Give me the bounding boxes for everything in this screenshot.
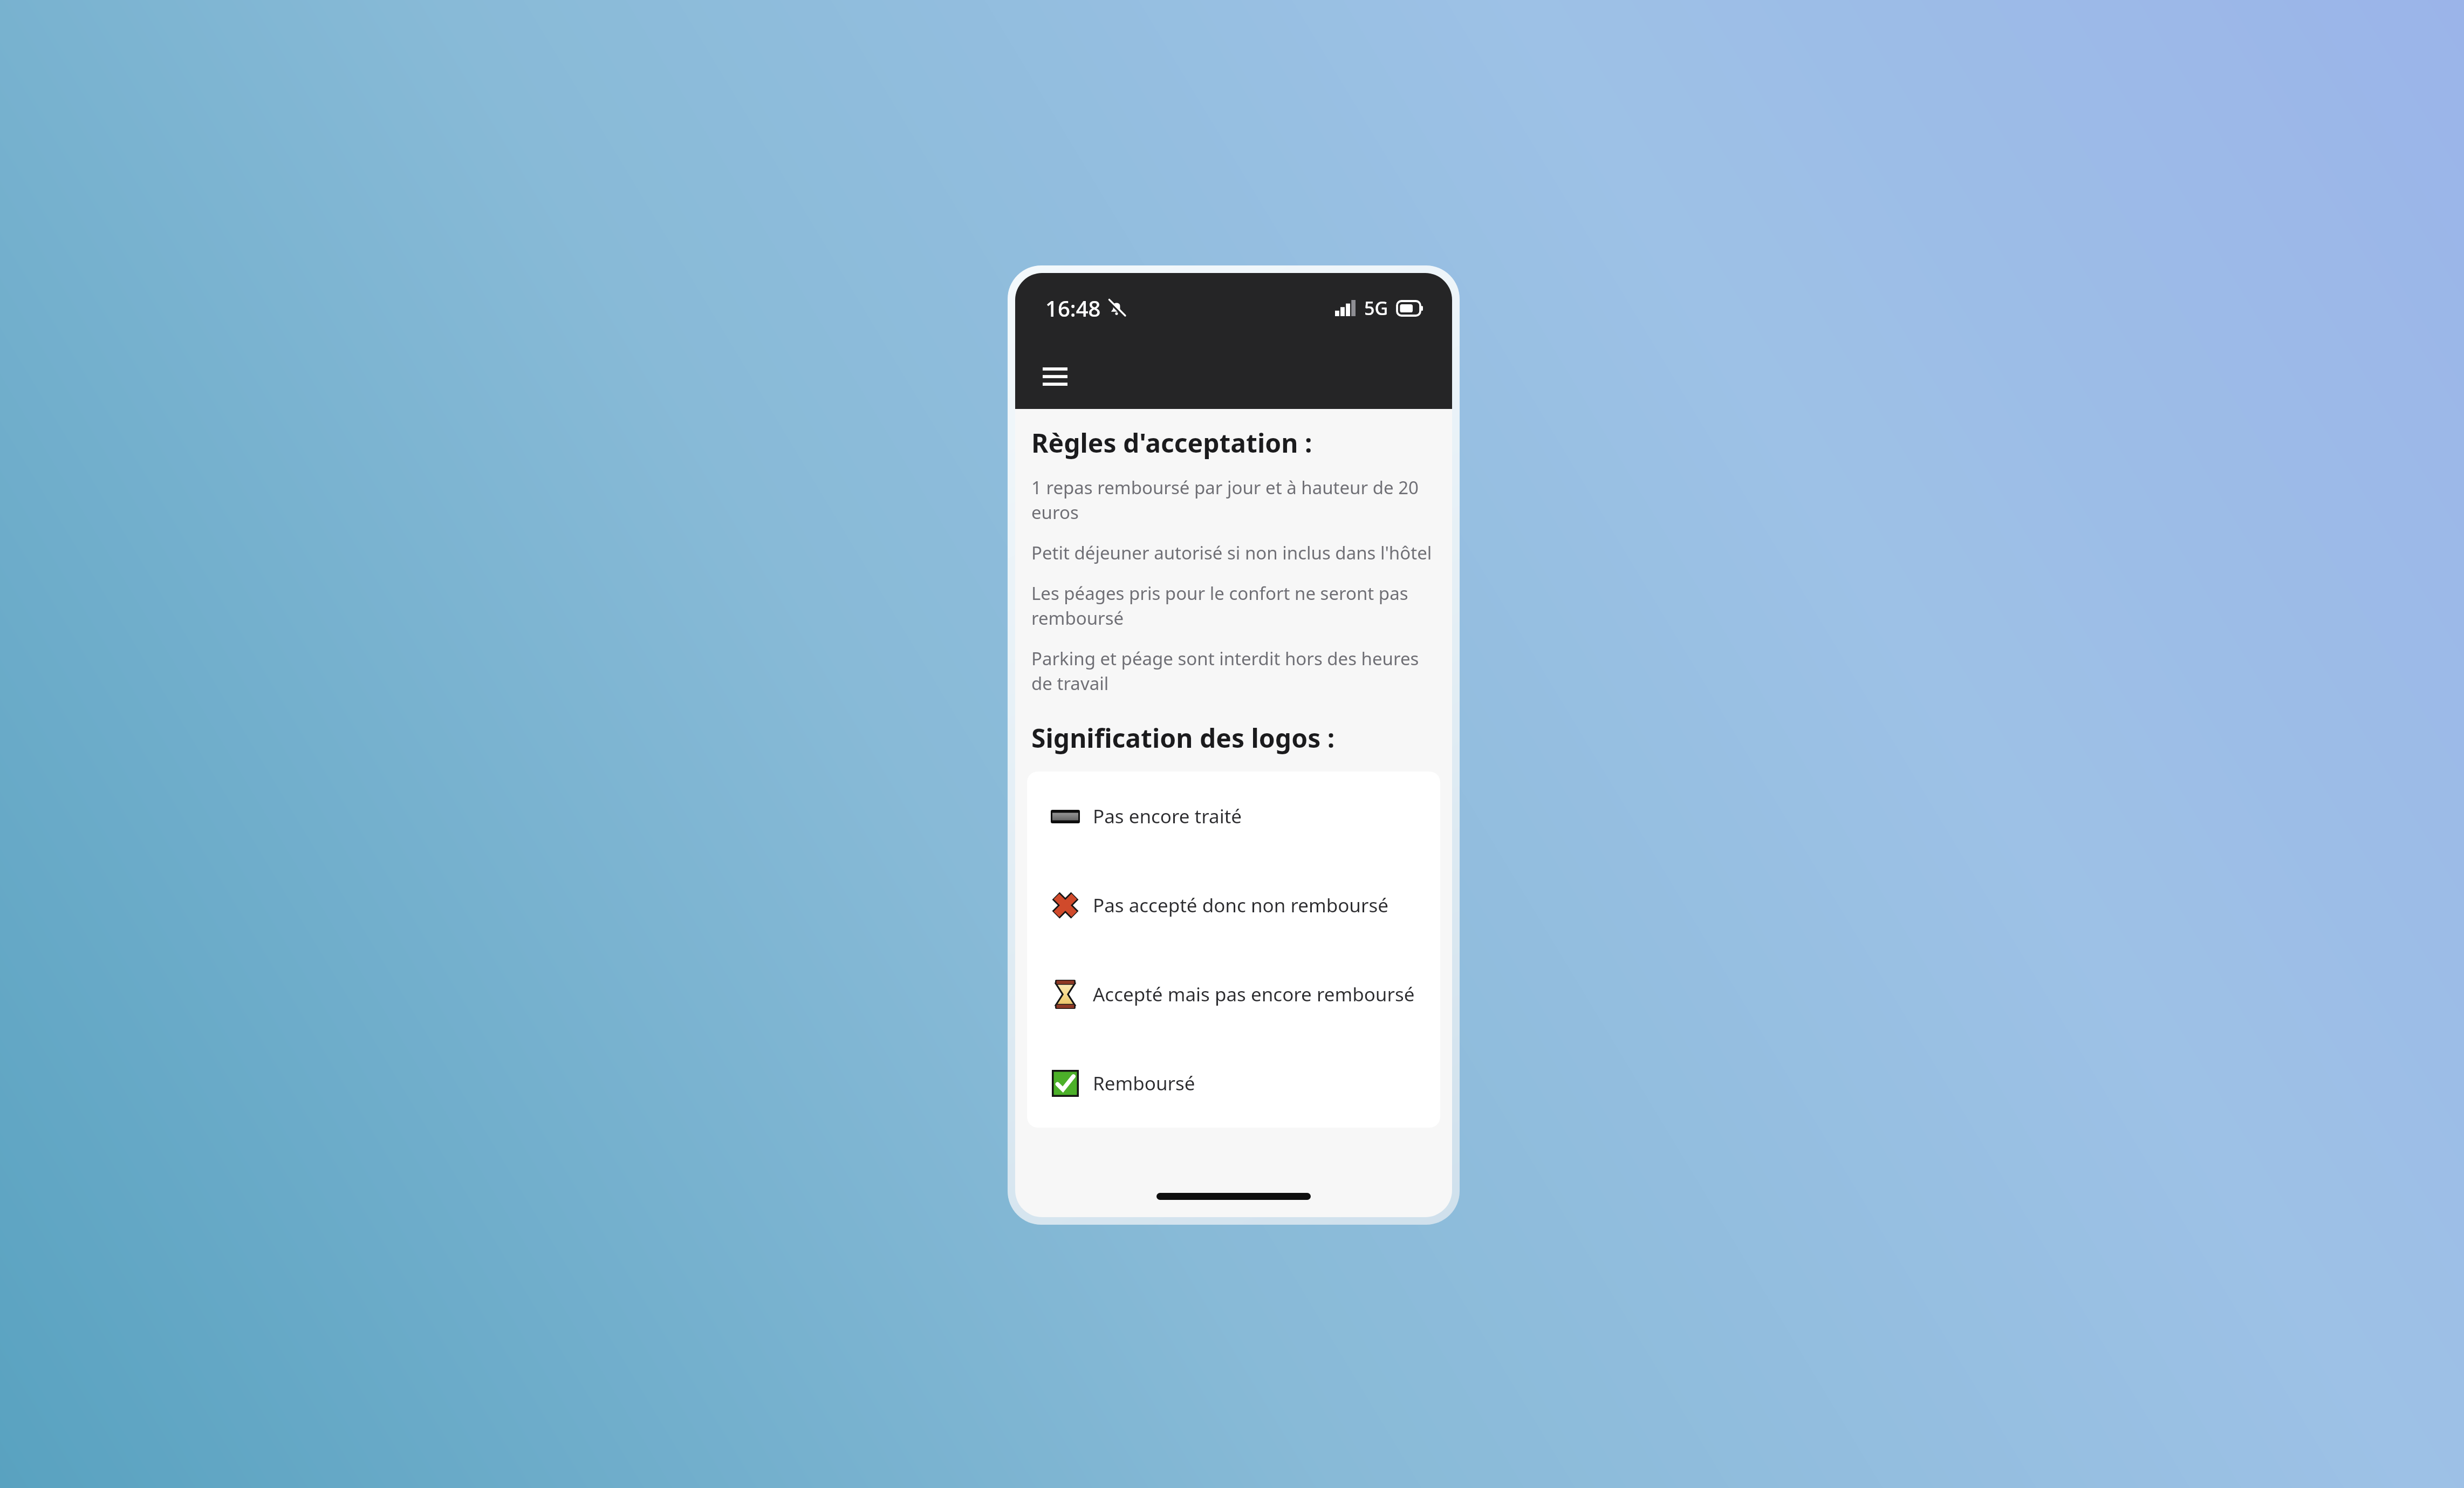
- staticText: 16:48: [1045, 293, 1101, 323]
- staticText: Pas encore traité: [1093, 803, 1242, 829]
- staticText: Remboursé: [1093, 1070, 1195, 1096]
- staticText: 1 repas remboursé par jour et à hauteur …: [1031, 475, 1436, 524]
- staticText: 5G: [1364, 296, 1388, 320]
- button[interactable]: Open navigation menu: [1033, 355, 1077, 398]
- staticText: Parking et péage sont interdit hors des …: [1031, 646, 1436, 695]
- staticText: Pas accepté donc non remboursé: [1093, 892, 1388, 918]
- button[interactable]: Pas encore traité: [1027, 772, 1440, 861]
- button[interactable]: Accepté mais pas encore remboursé: [1027, 950, 1440, 1039]
- staticText: Signification des logos :: [1031, 720, 1335, 755]
- button[interactable]: Pas accepté donc non remboursé: [1027, 861, 1440, 950]
- button[interactable]: Remboursé: [1027, 1039, 1440, 1128]
- staticText: Les péages pris pour le confort ne seron…: [1031, 581, 1436, 630]
- staticText: Petit déjeuner autorisé si non inclus da…: [1031, 541, 1432, 565]
- staticText: Accepté mais pas encore remboursé: [1093, 981, 1415, 1007]
- staticText: Règles d'acceptation :: [1031, 425, 1312, 460]
